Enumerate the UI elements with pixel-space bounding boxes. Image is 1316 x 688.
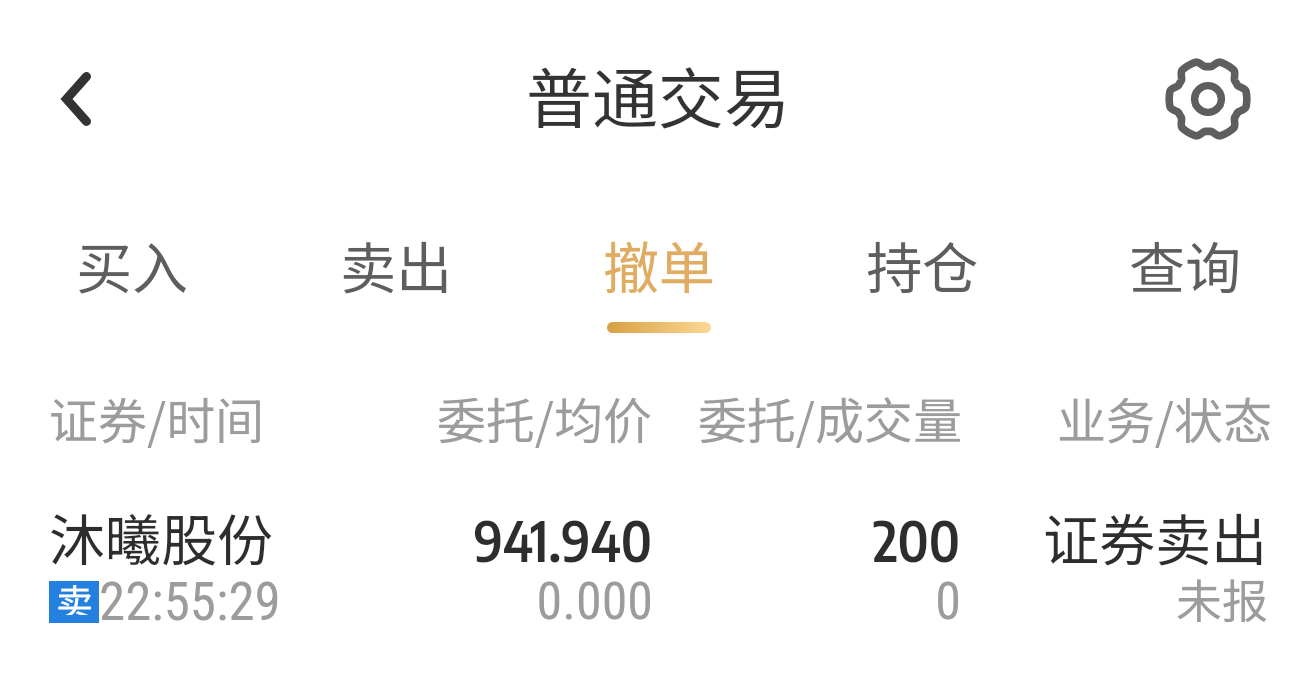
button[interactable]: Settings [1158, 49, 1258, 149]
staticText: 委托/均价 [300, 382, 652, 453]
staticText: 证券/时间 [49, 382, 449, 453]
button[interactable]: 买入 [0, 224, 264, 339]
staticText: 941.940 [300, 505, 652, 574]
staticText: 普通交易 [0, 46, 1316, 142]
staticText: 未报 [950, 565, 1268, 632]
button[interactable]: 查询 [1053, 224, 1316, 339]
button[interactable]: Back [22, 57, 106, 141]
staticText: 0 [600, 571, 961, 632]
button[interactable]: 撤单 [527, 224, 790, 339]
staticText: 沐曦股份 [49, 496, 449, 577]
button[interactable]: 卖出 [264, 224, 527, 339]
staticText: 卖出 [340, 224, 452, 305]
staticText: 委托/成交量 [600, 382, 962, 453]
staticText: 业务/状态 [950, 382, 1272, 453]
staticText: 22:55:29 [99, 571, 281, 633]
staticText: 卖 [56, 573, 93, 615]
staticText: 0.000 [300, 571, 653, 632]
button[interactable]: 持仓 [790, 224, 1053, 339]
staticText: 买入 [76, 224, 188, 305]
staticText: 200 [600, 505, 960, 574]
staticText: 持仓 [866, 224, 978, 305]
staticText: 撤单 [603, 224, 715, 305]
staticText: 证券卖出 [950, 496, 1267, 577]
staticText: 查询 [1129, 224, 1241, 305]
button[interactable]: 沐曦股份 [0, 480, 1316, 650]
